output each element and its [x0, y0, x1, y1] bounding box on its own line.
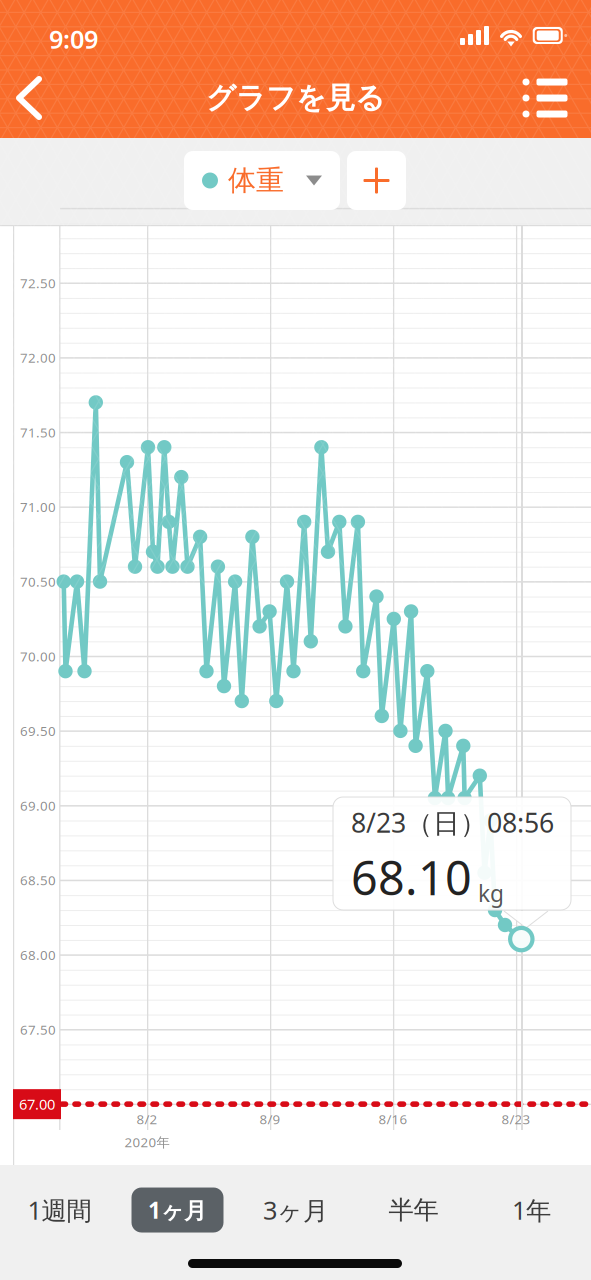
staticText: 8/9 [259, 1110, 280, 1128]
staticText: 70.50 [20, 573, 56, 590]
staticText: 半年 [388, 1194, 438, 1225]
staticText: 8/2 [136, 1110, 157, 1128]
staticText: 8/23 [501, 1110, 530, 1128]
button[interactable]: 体重 [184, 151, 340, 210]
staticText: 8/16 [378, 1110, 407, 1128]
staticText: 68.50 [20, 871, 56, 889]
button[interactable]: 1ヶ月 [118, 1177, 236, 1243]
staticText: 67.00 [19, 1094, 55, 1114]
staticText: kg [472, 878, 504, 908]
staticText: 体重 [228, 163, 284, 198]
button[interactable]: 1年 [472, 1177, 590, 1243]
staticText: 8/23（日）08:56 [351, 805, 554, 840]
button[interactable]: Back [0, 68, 60, 128]
staticText: 2020年 [124, 1133, 169, 1151]
staticText: 71.50 [20, 423, 56, 441]
staticText: 72.50 [20, 274, 56, 292]
staticText: 68.00 [20, 946, 56, 964]
staticText: グラフを見る [206, 80, 385, 116]
staticText: 70.00 [20, 647, 56, 665]
staticText: 1ヶ月 [148, 1195, 207, 1225]
staticText: 1年 [512, 1193, 551, 1227]
staticText: 9:09 [49, 22, 98, 56]
staticText: 1週間 [27, 1193, 91, 1227]
staticText: 69.00 [20, 797, 56, 814]
button[interactable]: 半年 [354, 1177, 472, 1243]
button[interactable]: Menu [515, 68, 575, 128]
staticText: 3ヶ月 [263, 1193, 328, 1227]
staticText: 71.00 [20, 498, 56, 516]
staticText: 72.00 [20, 349, 56, 366]
staticText: 67.50 [20, 1021, 56, 1038]
staticText: 68.10 [351, 846, 472, 908]
button[interactable]: 3ヶ月 [236, 1177, 354, 1243]
button[interactable]: Add [347, 151, 406, 210]
staticText: 69.50 [20, 722, 56, 740]
button[interactable]: 1週間 [0, 1177, 118, 1243]
